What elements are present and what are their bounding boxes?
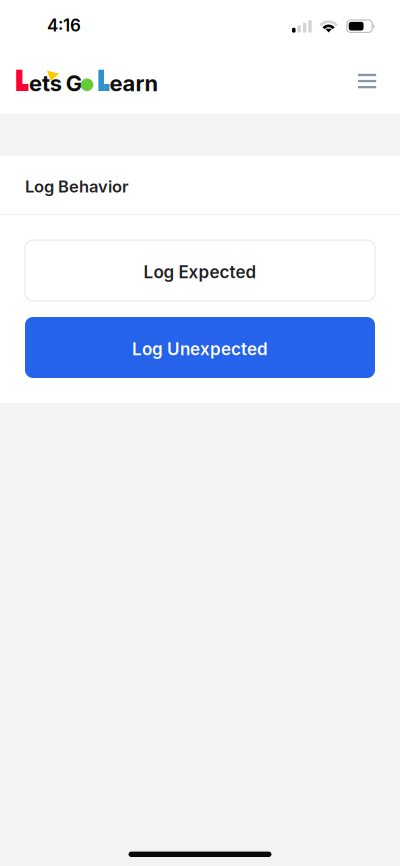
staticText: s <box>50 70 62 97</box>
staticText: et <box>29 70 50 97</box>
staticText: G <box>66 70 82 97</box>
button[interactable]: Menu <box>345 60 389 102</box>
staticText: Log Expected <box>143 262 256 282</box>
button[interactable]: Log Expected <box>25 240 375 301</box>
staticText: earn <box>110 70 159 97</box>
button[interactable]: Log Unexpected <box>25 317 375 378</box>
staticText: 4:16 <box>47 15 81 36</box>
staticText: Log Unexpected <box>132 339 268 359</box>
staticText: Log Behavior <box>25 176 129 196</box>
